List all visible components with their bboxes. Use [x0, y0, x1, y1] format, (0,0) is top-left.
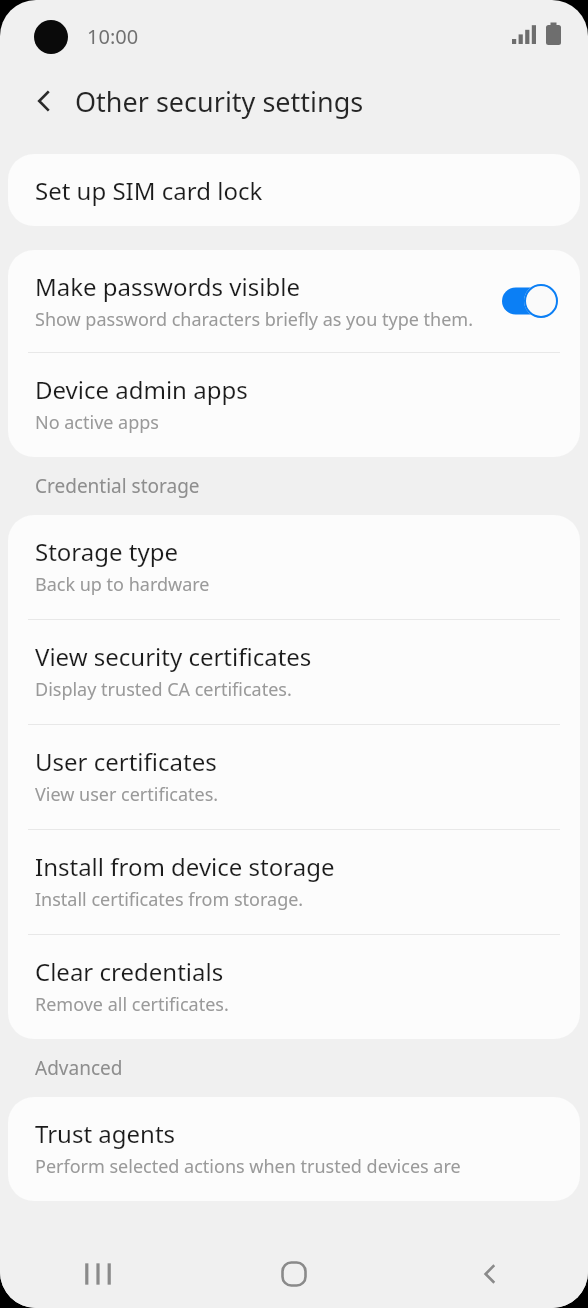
button[interactable]: Make passwords visible toggle	[502, 284, 558, 318]
staticText: Device admin apps	[35, 373, 248, 406]
button[interactable]: Back	[392, 1240, 588, 1308]
button[interactable]: Set up SIM card lock	[8, 154, 580, 226]
button[interactable]: Install from device storage	[8, 830, 580, 934]
staticText: Set up SIM card lock	[35, 174, 263, 207]
staticText: User certificates	[35, 745, 217, 778]
button[interactable]: Clear credentials	[8, 935, 580, 1039]
staticText: Back up to hardware	[35, 572, 210, 597]
staticText: Other security settings	[75, 83, 364, 120]
staticText: Perform selected actions when trusted de…	[35, 1154, 461, 1179]
button[interactable]: Navigate up	[22, 79, 66, 123]
staticText: Install certificates from storage.	[35, 887, 304, 912]
staticText: Clear credentials	[35, 955, 224, 988]
staticText: Remove all certificates.	[35, 992, 229, 1017]
staticText: Show password characters briefly as you …	[35, 307, 473, 332]
staticText: Storage type	[35, 535, 178, 568]
button[interactable]: User certificates	[8, 725, 580, 829]
button[interactable]: View security certificates	[8, 620, 580, 724]
button[interactable]: Device admin apps	[8, 353, 580, 457]
staticText: No active apps	[35, 410, 159, 435]
staticText: Display trusted CA certificates.	[35, 677, 292, 702]
button[interactable]: Trust agents	[8, 1097, 580, 1201]
staticText: Credential storage	[35, 473, 200, 499]
staticText: Make passwords visible	[35, 270, 300, 303]
button[interactable]: Recent apps	[0, 1240, 196, 1308]
staticText: Advanced	[35, 1055, 123, 1081]
button[interactable]: Home	[196, 1240, 392, 1308]
staticText: View user certificates.	[35, 782, 219, 807]
staticText: 10:00	[87, 23, 139, 50]
staticText: Install from device storage	[35, 850, 335, 883]
staticText: View security certificates	[35, 640, 312, 673]
button[interactable]: Make passwords visible	[8, 250, 580, 352]
button[interactable]: Storage type	[8, 515, 580, 619]
staticText: Trust agents	[35, 1117, 176, 1150]
